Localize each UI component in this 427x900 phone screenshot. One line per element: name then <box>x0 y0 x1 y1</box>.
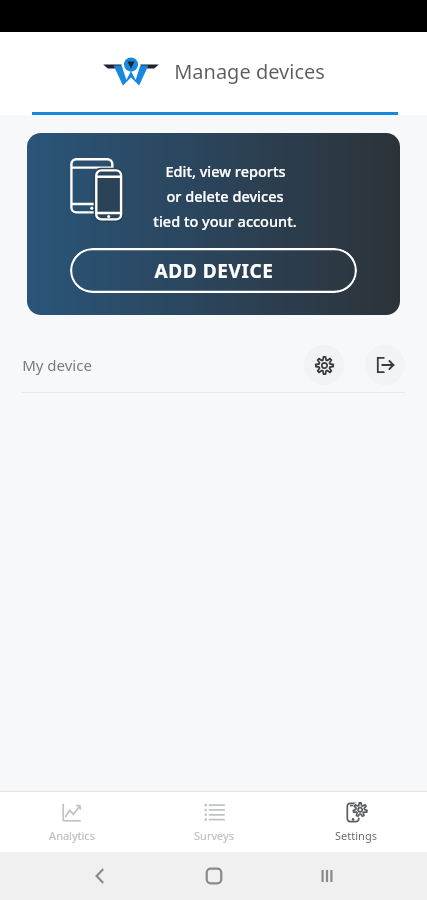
staticText: Surveys <box>194 828 234 843</box>
button[interactable]: Surveys <box>143 792 285 852</box>
staticText: Manage devices <box>174 58 325 85</box>
staticText: or delete devices <box>166 186 284 206</box>
staticText: Edit, view reports <box>165 161 286 181</box>
staticText: ADD DEVICE <box>154 258 274 284</box>
button[interactable]: Sign out <box>365 345 405 385</box>
staticText: Settings <box>335 828 377 843</box>
staticText: tied to your account. <box>153 211 297 231</box>
button[interactable]: Settings <box>304 345 344 385</box>
staticText: Analytics <box>49 828 95 843</box>
button[interactable]: Settings <box>285 792 427 852</box>
button[interactable]: My device <box>0 337 427 392</box>
button[interactable]: Analytics <box>0 792 143 852</box>
staticText: My device <box>22 355 92 375</box>
button[interactable]: ADD DEVICE <box>70 248 357 293</box>
